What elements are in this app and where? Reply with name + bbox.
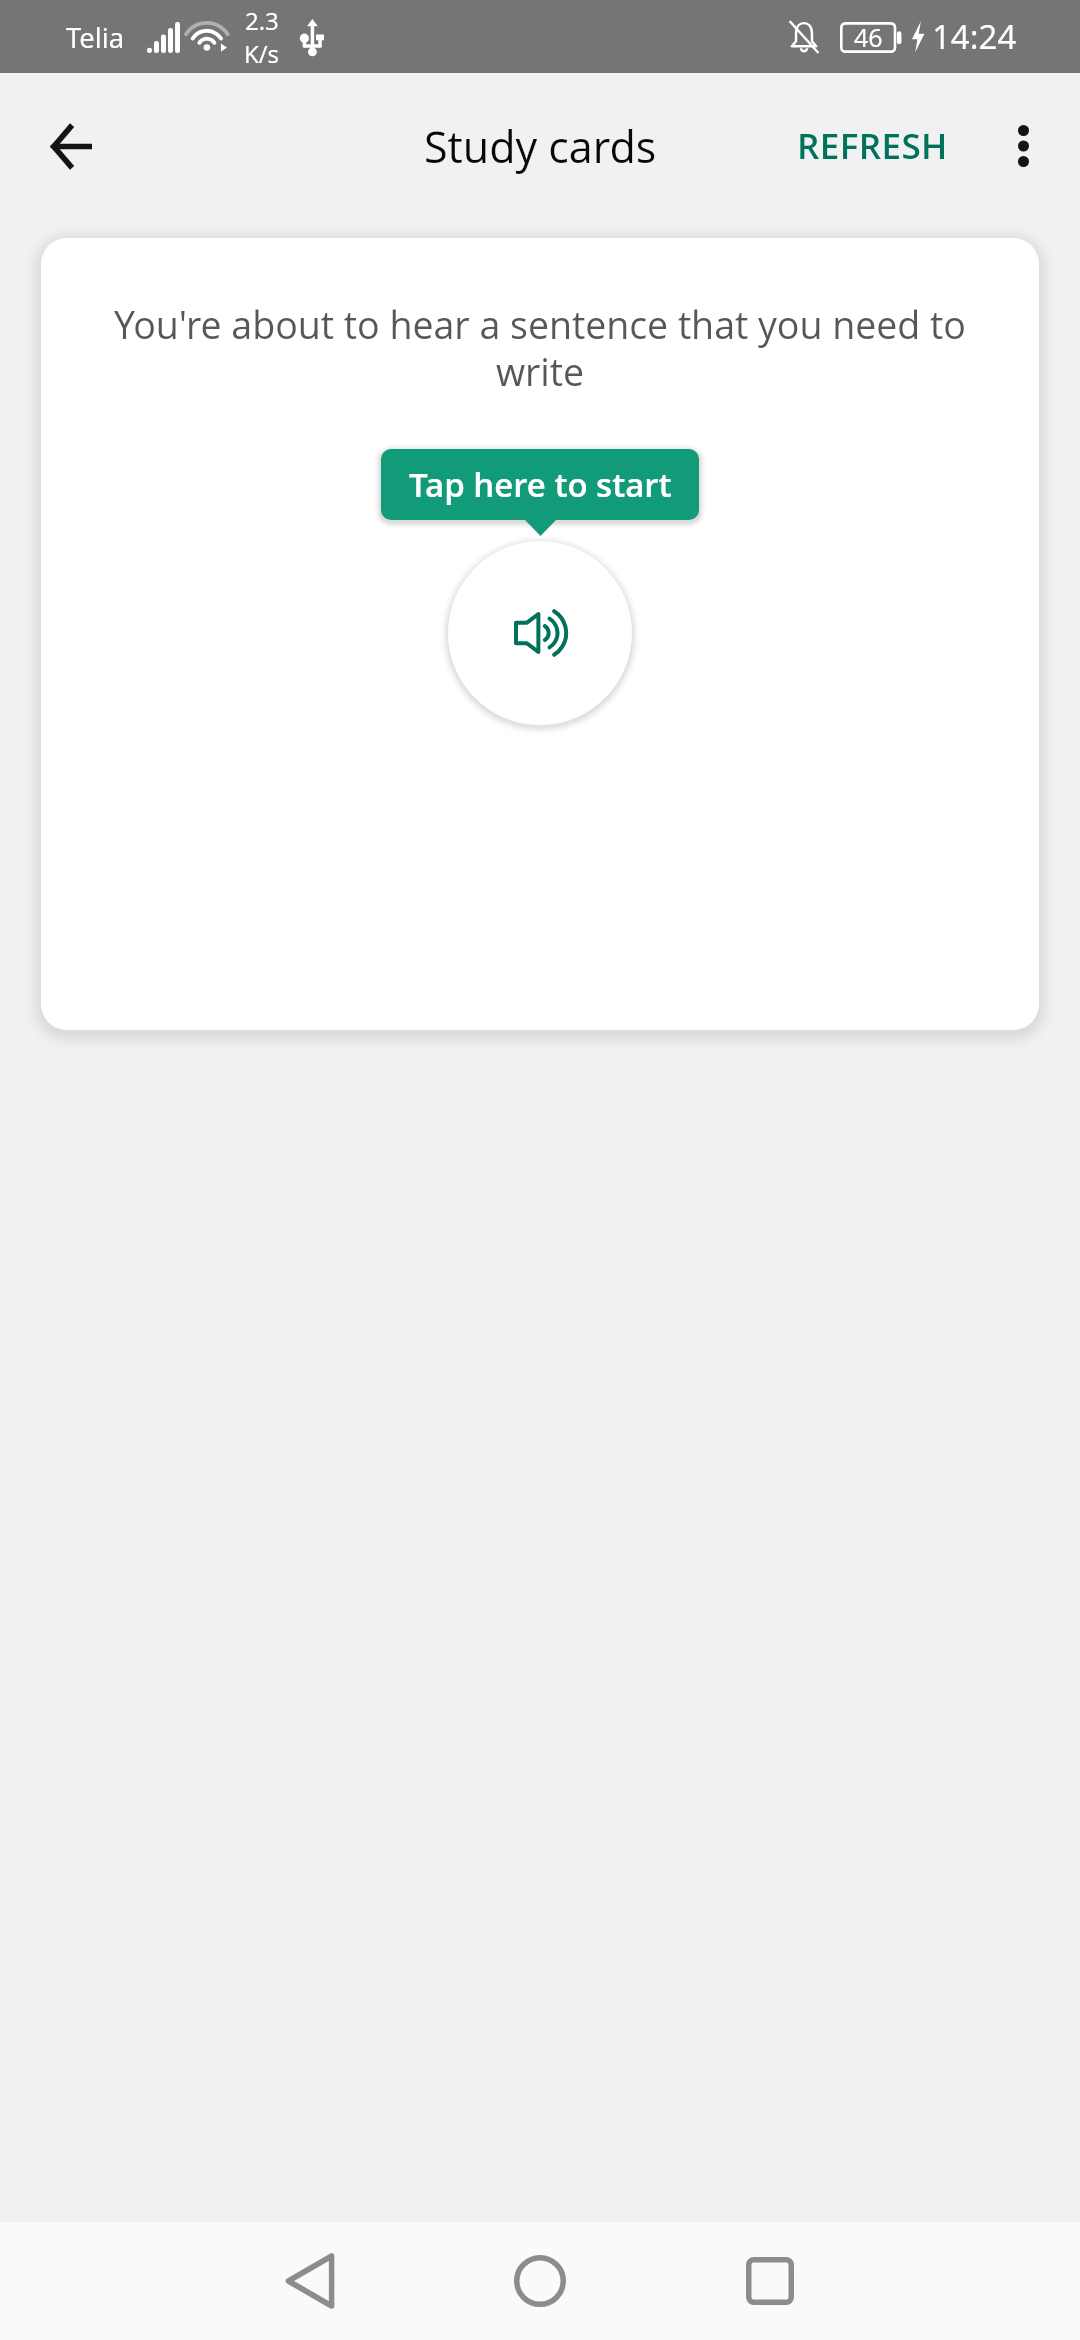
button[interactable]: Tap here to start — [381, 449, 699, 520]
staticText: REFRESH — [797, 122, 948, 170]
button[interactable]: Back — [23, 98, 119, 194]
staticText: Telia — [66, 19, 124, 56]
staticText: 46 — [854, 20, 883, 54]
staticText: Tap here to start — [409, 462, 672, 507]
staticText: K/s — [244, 37, 279, 70]
button[interactable]: More options — [977, 100, 1069, 192]
staticText: 2.3 — [245, 4, 279, 37]
button[interactable]: Play audio — [448, 541, 632, 725]
button[interactable]: Recent apps — [715, 2226, 825, 2336]
button[interactable]: Back — [255, 2226, 365, 2336]
button[interactable]: REFRESH — [775, 96, 970, 196]
staticText: 14:24 — [932, 14, 1017, 59]
staticText: Study cards — [424, 117, 657, 176]
staticText: You're about to hear a sentence that you… — [103, 299, 977, 397]
button[interactable]: Home — [485, 2226, 595, 2336]
